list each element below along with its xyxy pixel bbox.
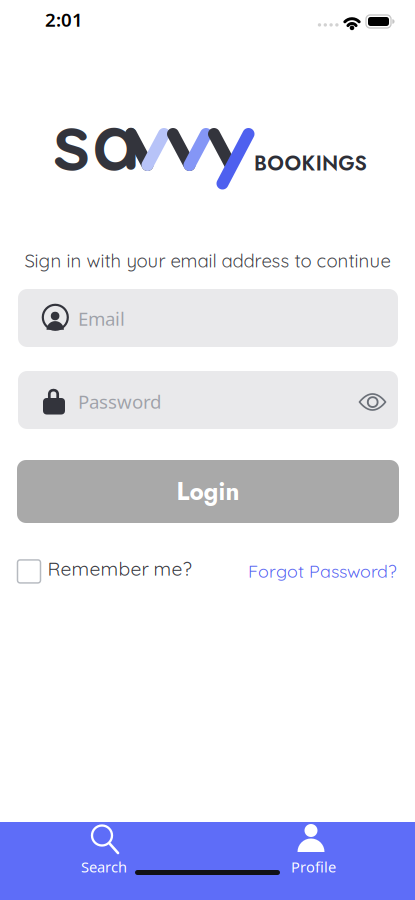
staticText: Search [81,857,127,876]
staticText: Remember me? [47,556,191,581]
button[interactable]: Profile [259,823,363,871]
button[interactable]: Password [18,371,398,429]
staticText: 2:01 [45,7,83,32]
button[interactable]: Search [52,823,156,871]
staticText: Login [176,474,239,509]
staticText: BOOKINGS [254,148,366,178]
staticText: Sign in with your email address to conti… [24,249,390,272]
staticText: Profile [291,857,336,876]
button[interactable]: Login [17,460,399,523]
button[interactable]: Remember me? [17,559,191,583]
button[interactable]: Email [18,289,398,347]
staticText: Email [78,306,125,331]
button[interactable]: Forgot Password? [248,560,397,582]
staticText: Forgot Password? [248,560,397,582]
staticText: sa [53,92,141,189]
staticText: Password [78,389,161,414]
